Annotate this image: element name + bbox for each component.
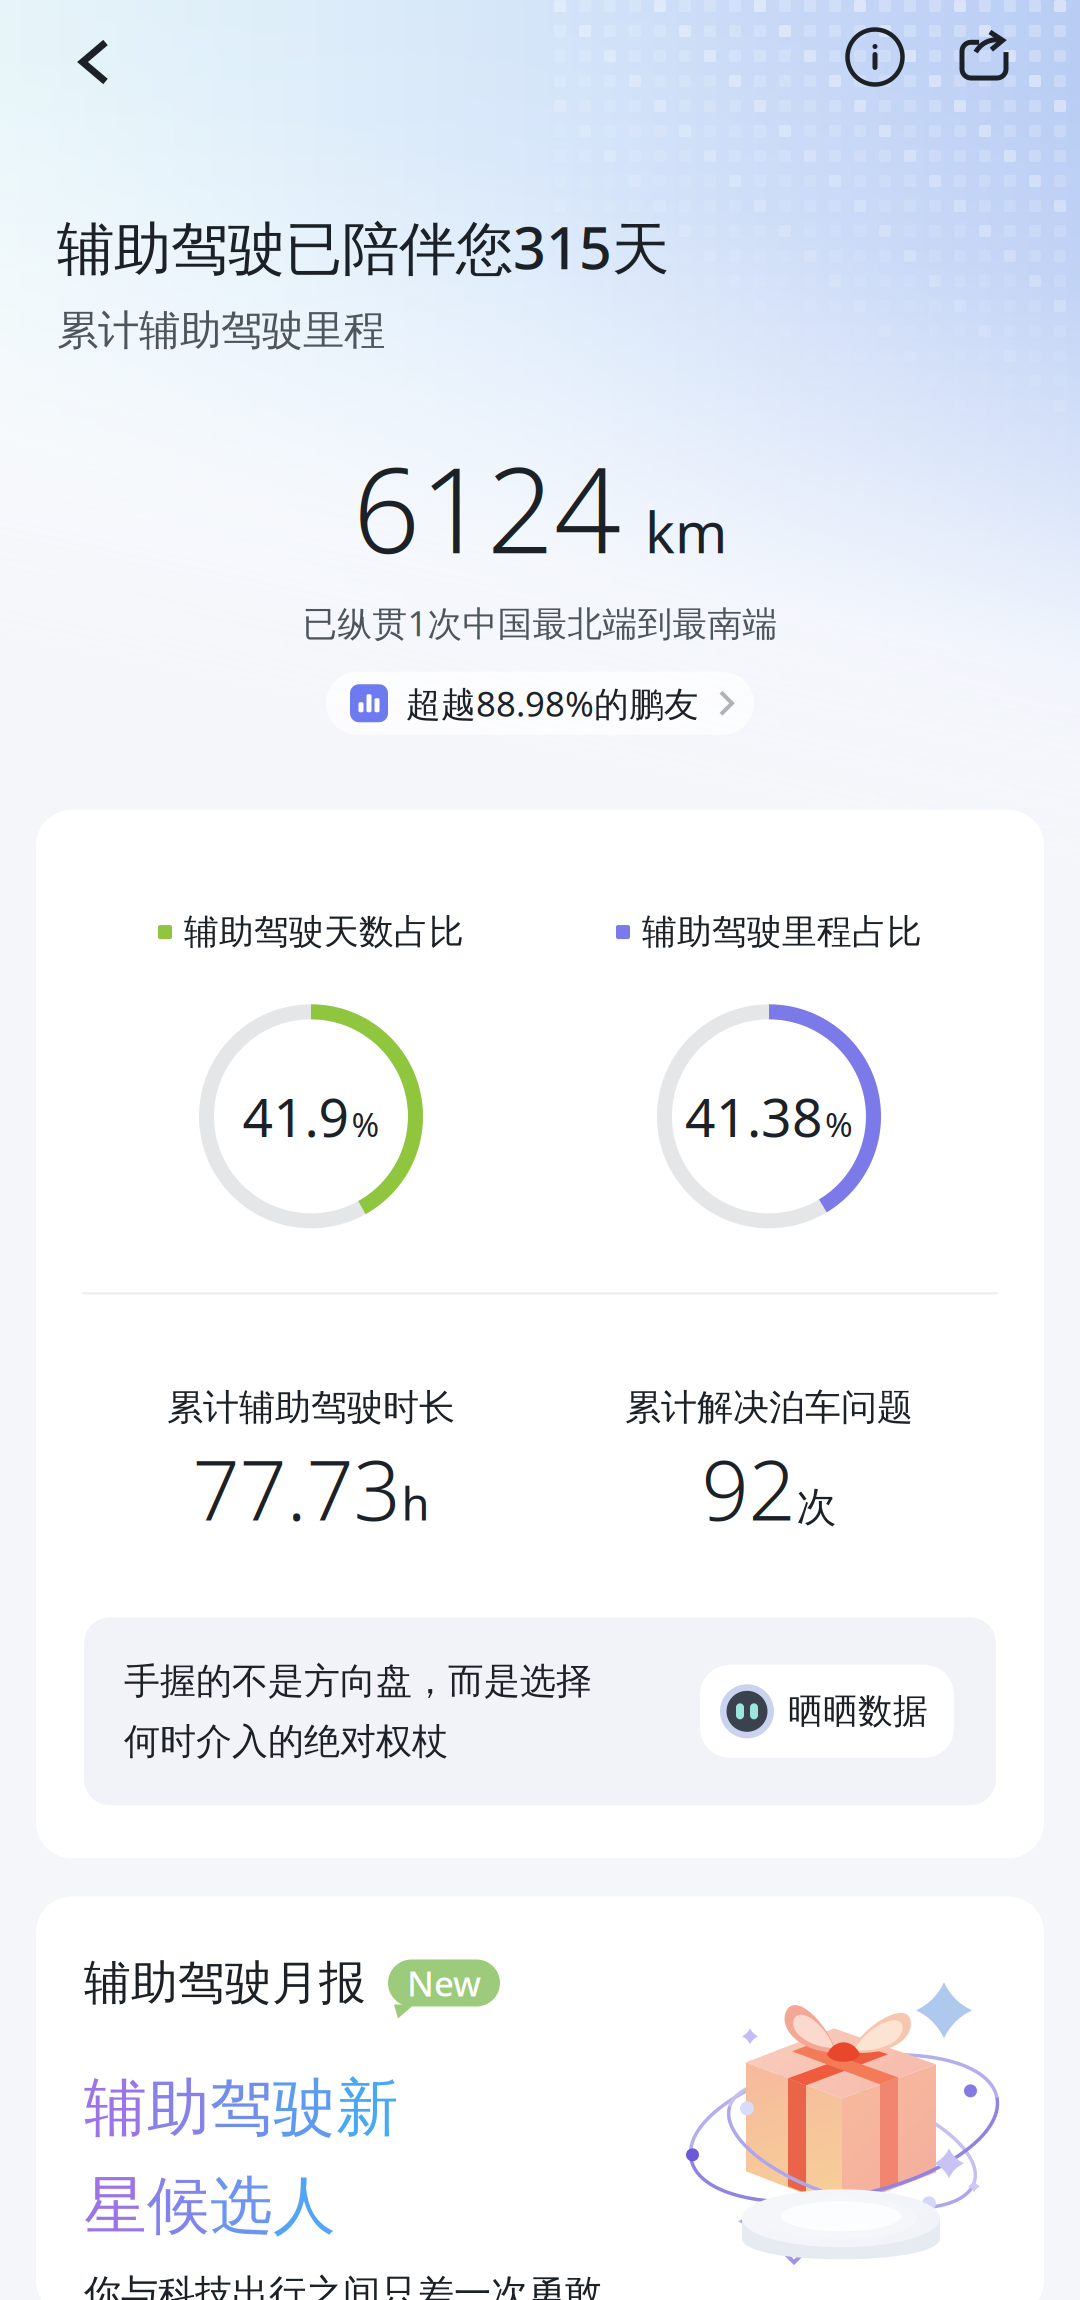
staticText: 驶 (273, 2070, 336, 2147)
staticText: 助 (147, 2070, 210, 2147)
staticText: 累计解决泊车问题 (625, 1385, 913, 1429)
staticText: 辅助驾驶月报 (84, 1954, 366, 2012)
staticText: h (401, 1473, 429, 1533)
staticText: 累计辅助驾驶时长 (167, 1385, 455, 1429)
button[interactable]: 超越88.98%的鹏友 (326, 672, 754, 735)
staticText: New (407, 1960, 481, 2006)
staticText: 驾 (210, 2070, 273, 2147)
staticText: 已纵贯1次中国最北端到最南端 (302, 600, 777, 646)
staticText: 辅助驾驶里程占比 (642, 911, 922, 953)
staticText: 6124 (353, 430, 621, 586)
button[interactable]: Back (41, 0, 147, 124)
staticText: 41.9 (242, 1081, 349, 1152)
staticText: 选 (210, 2168, 273, 2245)
staticText: 超越88.98%的鹏友 (406, 680, 699, 726)
staticText: 辅助驾驶天数占比 (184, 911, 464, 953)
staticText: 候 (147, 2168, 210, 2245)
button[interactable]: Info (807, 7, 925, 117)
button[interactable]: Share (925, 5, 1047, 119)
staticText: 新 (336, 2070, 399, 2147)
staticText: 77.73 (192, 1434, 400, 1543)
staticText: 你与科技出行之间只差一次勇敢 (84, 2271, 602, 2300)
staticText: 晒晒数据 (788, 1690, 928, 1733)
staticText: 人 (273, 2168, 336, 2245)
staticText: 辅 (84, 2070, 147, 2147)
staticText: % (825, 1102, 853, 1146)
staticText: 手握的不是方向盘，而是选择 (124, 1659, 592, 1703)
staticText: 星 (84, 2168, 147, 2245)
staticText: 累计辅助驾驶里程 (57, 305, 385, 356)
staticText: 何时介入的绝对权杖 (124, 1719, 448, 1763)
staticText: km (645, 494, 727, 569)
staticText: 辅助驾驶已陪伴您315天 (57, 209, 669, 285)
staticText: 41.38 (685, 1081, 823, 1152)
staticText: 次 (796, 1483, 836, 1532)
button[interactable]: 晒晒数据 (700, 1665, 954, 1758)
staticText: 92 (701, 1434, 795, 1543)
button[interactable]: New (388, 1959, 500, 2006)
staticText: % (351, 1102, 379, 1146)
